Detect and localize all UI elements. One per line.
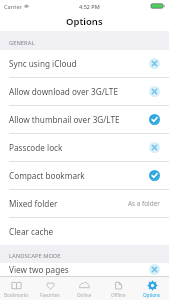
staticText: LANDSCAPE MODE	[9, 252, 61, 260]
staticText: Compact bookmark	[9, 170, 85, 181]
button[interactable]: Mixed folder	[0, 190, 169, 217]
staticText: Mixed folder	[9, 198, 58, 209]
staticText: View two pages	[9, 264, 69, 275]
staticText: Passcode lock	[9, 142, 63, 153]
other: Disabled	[149, 142, 160, 153]
staticText: Allow thumbnail over 3G/LTE	[9, 114, 120, 125]
button[interactable]: Offline	[101, 277, 135, 300]
staticText: Sync using iCloud	[9, 58, 77, 69]
staticText: 4:52 PM	[79, 3, 100, 10]
other: Disabled	[149, 264, 160, 275]
staticText: Offline	[111, 292, 126, 298]
staticText: Clear cache	[9, 226, 54, 237]
other: Disabled	[149, 86, 160, 97]
staticText: Carrier	[4, 3, 22, 10]
button[interactable]: Compact bookmark	[0, 162, 169, 189]
button[interactable]: Options	[135, 277, 169, 300]
button[interactable]: Sync using iCloud	[0, 50, 169, 77]
button[interactable]: Allow thumbnail over 3G/LTE	[0, 106, 169, 133]
button[interactable]: Favorites	[33, 277, 67, 300]
button[interactable]: Allow download over 3G/LTE	[0, 78, 169, 105]
button[interactable]: Online	[67, 277, 101, 300]
staticText: Options	[66, 15, 103, 28]
staticText: Allow download over 3G/LTE	[9, 86, 118, 97]
button[interactable]: Clear cache	[0, 218, 169, 245]
other: Disabled	[149, 58, 160, 69]
button[interactable]: View two pages	[0, 263, 169, 276]
other: Enabled	[149, 114, 160, 125]
staticText: Bookmarks	[4, 292, 29, 298]
staticText: Favorites	[40, 292, 60, 298]
staticText: Online	[77, 292, 92, 298]
staticText: GENERAL	[9, 39, 35, 47]
staticText: As a folder	[128, 199, 160, 208]
button[interactable]: Passcode lock	[0, 134, 169, 161]
button[interactable]: Bookmarks	[0, 277, 33, 300]
other: Enabled	[149, 170, 160, 181]
staticText: Options	[143, 292, 161, 298]
